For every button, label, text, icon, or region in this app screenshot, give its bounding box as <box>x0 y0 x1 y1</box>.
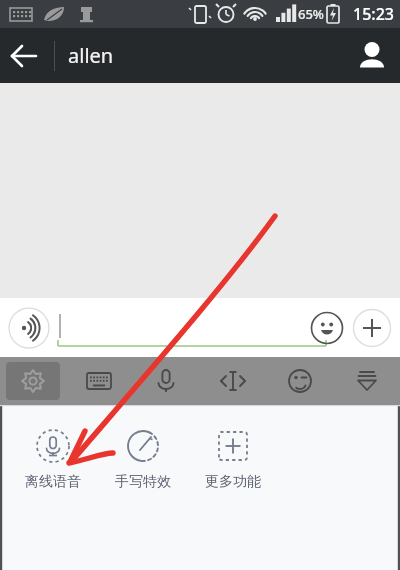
button[interactable] <box>58 308 338 348</box>
button[interactable]: Voice input <box>138 362 193 400</box>
button[interactable]: Contact profile <box>344 28 400 83</box>
button[interactable]: Settings <box>6 362 60 400</box>
button[interactable]: Emoticons <box>272 362 327 400</box>
button[interactable]: 离线语音 <box>8 425 98 493</box>
button[interactable]: Cursor move <box>205 362 260 400</box>
staticText: 更多功能 <box>205 473 261 491</box>
button[interactable]: 更多功能 <box>188 425 278 493</box>
button[interactable]: 手写特效 <box>98 425 188 493</box>
button[interactable]: Hide keyboard <box>339 362 394 400</box>
button[interactable]: Keyboard <box>72 362 126 400</box>
button[interactable]: Add attachment <box>352 308 392 348</box>
staticText: 15:23 <box>353 3 394 25</box>
button[interactable]: Back <box>0 30 52 82</box>
staticText: 手写特效 <box>115 473 171 491</box>
button[interactable]: Emoji <box>310 311 344 345</box>
staticText: 离线语音 <box>25 473 81 491</box>
button[interactable]: Voice message <box>8 307 50 349</box>
staticText: 65% <box>298 5 324 23</box>
staticText: allen <box>68 42 114 69</box>
